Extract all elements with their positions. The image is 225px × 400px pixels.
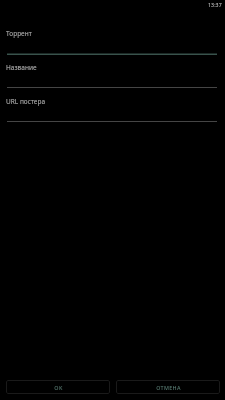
staticText: ОТМЕНА	[156, 384, 181, 391]
button[interactable]	[0, 93, 225, 122]
staticText: OK	[54, 384, 63, 391]
button[interactable]: OK	[6, 380, 110, 394]
button[interactable]: ОТМЕНА	[116, 380, 220, 394]
button[interactable]	[0, 25, 225, 55]
staticText: Название	[6, 63, 37, 72]
staticText: Торрент	[6, 29, 32, 38]
staticText: URL постера	[6, 97, 46, 106]
staticText: 13:37	[208, 1, 222, 8]
button[interactable]	[0, 59, 225, 88]
